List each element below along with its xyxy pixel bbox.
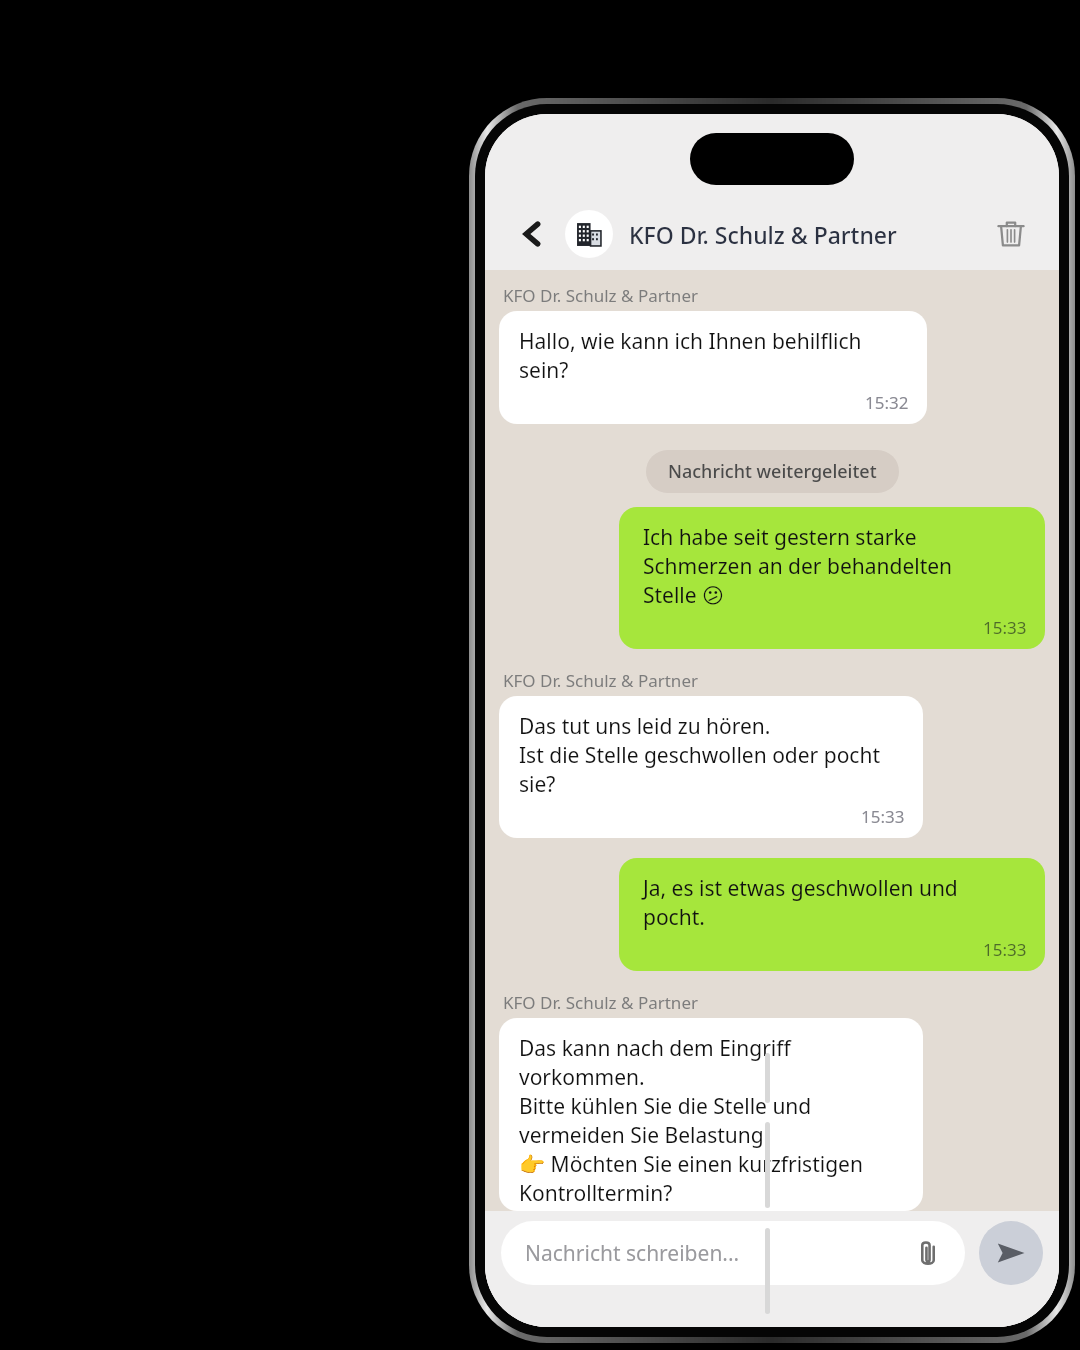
staticText: Ist die Stelle geschwollen oder pocht <box>519 741 881 770</box>
button[interactable]: Ja, es ist etwas geschwollen und <box>619 858 1045 971</box>
button[interactable]: Hallo, wie kann ich Ihnen behilflich <box>499 311 927 424</box>
button[interactable]: Ich habe seit gestern starke <box>619 507 1045 649</box>
staticText: 15:33 <box>861 805 905 828</box>
staticText: KFO Dr. Schulz & Partner <box>503 284 698 307</box>
staticText: vorkommen. <box>519 1063 645 1092</box>
staticText: sie? <box>519 770 556 799</box>
button[interactable]: Send <box>979 1221 1043 1285</box>
staticText: vermeiden Sie Belastung. <box>519 1121 770 1150</box>
staticText: Nachricht weitergeleitet <box>668 459 877 484</box>
staticText: 15:32 <box>865 391 909 414</box>
staticText: KFO Dr. Schulz & Partner <box>503 669 698 692</box>
staticText: Hallo, wie kann ich Ihnen behilflich <box>519 327 862 356</box>
staticText: Das tut uns leid zu hören. <box>519 712 771 741</box>
staticText: 15:33 <box>983 616 1027 639</box>
staticText: sein? <box>519 356 569 385</box>
button[interactable]: Das kann nach dem Eingriff <box>499 1018 923 1211</box>
button[interactable]: Das tut uns leid zu hören. <box>499 696 923 838</box>
staticText: Kontrolltermin? <box>519 1179 673 1201</box>
staticText: Schmerzen an der behandelten <box>643 552 953 581</box>
staticText: 👉 Möchten Sie einen kurzfristigen <box>519 1150 863 1179</box>
staticText: Ich habe seit gestern starke <box>643 523 917 552</box>
staticText: Das kann nach dem Eingriff <box>519 1034 791 1063</box>
staticText: 15:33 <box>983 938 1027 961</box>
staticText: KFO Dr. Schulz & Partner <box>503 991 698 1014</box>
button[interactable]: Back <box>509 210 557 258</box>
staticText: Stelle 😕 <box>643 581 724 610</box>
button[interactable]: Nachricht schreiben... <box>501 1221 965 1285</box>
staticText: Bitte kühlen Sie die Stelle und <box>519 1092 812 1121</box>
staticText: Nachricht schreiben... <box>525 1239 740 1268</box>
staticText: KFO Dr. Schulz & Partner <box>629 219 897 250</box>
staticText: Ja, es ist etwas geschwollen und <box>643 874 958 903</box>
staticText: pocht. <box>643 903 705 932</box>
button[interactable]: Delete chat <box>987 210 1035 258</box>
